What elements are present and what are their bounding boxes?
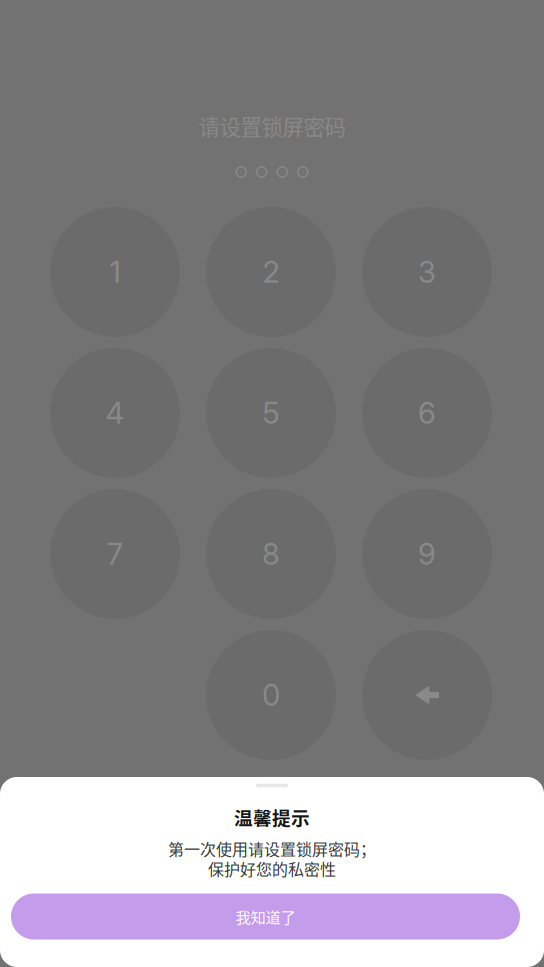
button[interactable]: 3	[362, 207, 492, 337]
staticText: 7	[107, 536, 123, 572]
staticText: 5	[262, 395, 279, 431]
button[interactable]: 7	[50, 489, 180, 619]
staticText: 保护好您的私密性	[208, 857, 336, 880]
staticText: 温馨提示	[234, 803, 310, 830]
staticText: 0	[262, 677, 280, 713]
staticText: 9	[418, 536, 436, 572]
button[interactable]: 9	[362, 489, 492, 619]
staticText: 第一次使用请设置锁屏密码；	[168, 837, 376, 860]
staticText: 请设置锁屏密码	[198, 110, 345, 142]
staticText: 4	[105, 395, 124, 431]
button[interactable]: 4	[50, 348, 180, 478]
button[interactable]: 我知道了	[11, 893, 520, 939]
button[interactable]: 5	[206, 348, 336, 478]
button[interactable]: Delete	[362, 630, 492, 760]
staticText: 2	[262, 254, 279, 290]
button[interactable]: 6	[362, 348, 492, 478]
staticText: 我知道了	[235, 905, 295, 928]
staticText: 8	[262, 536, 280, 572]
staticText: 3	[418, 254, 436, 290]
button[interactable]: 1	[50, 207, 180, 337]
button[interactable]: 2	[206, 207, 336, 337]
button[interactable]: 8	[206, 489, 336, 619]
button[interactable]: 0	[206, 630, 336, 760]
staticText: 6	[418, 395, 436, 431]
staticText: 1	[109, 254, 120, 290]
